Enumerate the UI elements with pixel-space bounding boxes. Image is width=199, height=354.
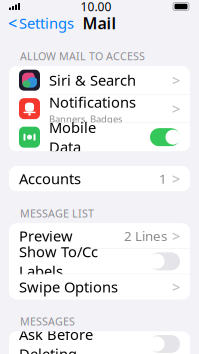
staticText: Accounts [19,169,81,188]
button[interactable]: Mobile Data [9,123,190,151]
button[interactable]: Accounts [9,166,190,191]
staticText: > [172,99,180,118]
staticText: 1 [159,170,167,187]
staticText: 2 Lines [124,227,167,245]
staticText: Swipe Options [19,277,118,297]
button[interactable]: Siri & Search [9,66,190,94]
staticText: > [172,277,180,297]
staticText: > [172,70,180,90]
staticText: Ask Before Deleting [19,324,93,354]
button[interactable]: Ask Before Deleting [9,331,190,354]
staticText: Siri & Search [49,70,136,90]
staticText: < [8,12,17,34]
button[interactable]: Show To/Cc Labels [9,249,190,274]
staticText: > [172,226,180,246]
button[interactable]: < [0,13,82,33]
button[interactable]: Swipe Options [9,274,190,299]
staticText: Notifications [49,92,136,112]
staticText: > [172,169,180,188]
staticText: Show To/Cc Labels [19,242,98,281]
button[interactable]: Notifications [9,95,190,123]
staticText: Preview [19,226,73,246]
staticText: 10.00 [80,0,111,14]
staticText: Mail [82,12,116,34]
button[interactable]: Preview [9,223,190,248]
staticText: Banners, Badges [49,113,122,125]
staticText: Mobile Data [49,118,96,157]
staticText: Settings [19,13,74,33]
staticText: ALLOW MAIL TO ACCESS [20,49,145,63]
staticText: MESSAGES [20,314,75,328]
staticText: MESSAGE LIST [20,206,94,220]
